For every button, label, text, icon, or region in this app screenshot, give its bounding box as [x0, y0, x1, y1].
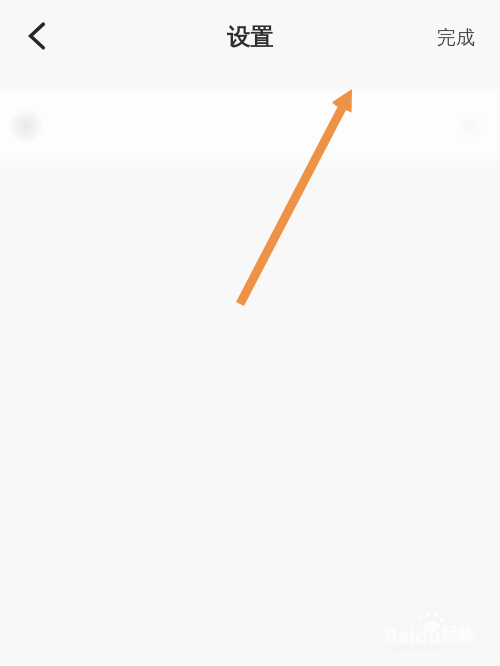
staticText: 设置	[227, 23, 273, 52]
button[interactable]: Account row	[0, 88, 500, 160]
button[interactable]: Back	[13, 12, 61, 60]
staticText: 完成	[437, 26, 475, 50]
button[interactable]: 完成	[417, 0, 500, 66]
